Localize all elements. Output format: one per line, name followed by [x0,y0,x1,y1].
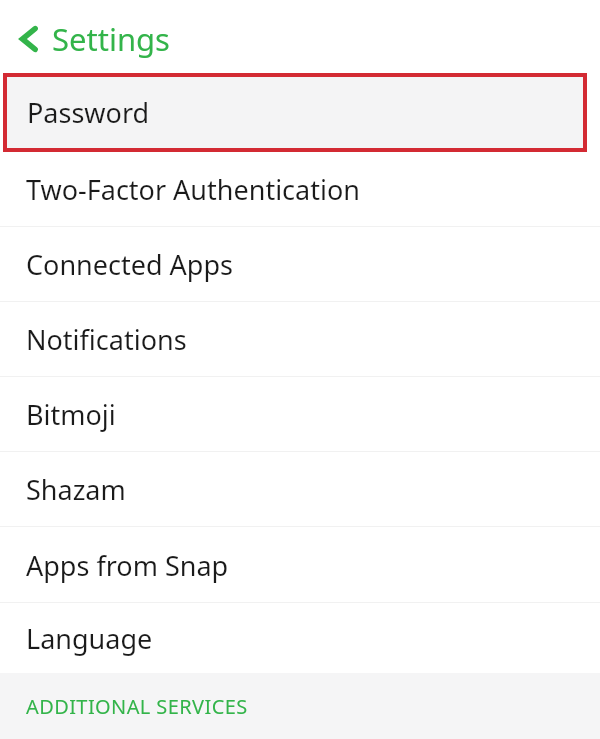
staticText: Bitmoji [26,396,116,433]
staticText: Apps from Snap [26,547,229,584]
other: Back [18,26,40,52]
button[interactable]: Password [3,73,587,152]
button[interactable]: Notifications [0,302,600,377]
staticText: Settings [52,18,170,60]
staticText: Language [26,620,153,657]
staticText: Two-Factor Authentication [26,171,360,208]
button[interactable]: Language [0,603,600,673]
staticText: Shazam [26,471,126,508]
button[interactable]: Two-Factor Authentication [0,152,600,227]
staticText: Notifications [26,321,187,358]
staticText: ADDITIONAL SERVICES [26,693,248,720]
button[interactable]: Shazam [0,452,600,527]
button[interactable]: Bitmoji [0,377,600,452]
staticText: Password [27,94,150,131]
button[interactable]: Connected Apps [0,227,600,302]
button[interactable]: Apps from Snap [0,527,600,603]
button[interactable]: Back [0,14,180,64]
staticText: Connected Apps [26,246,233,283]
